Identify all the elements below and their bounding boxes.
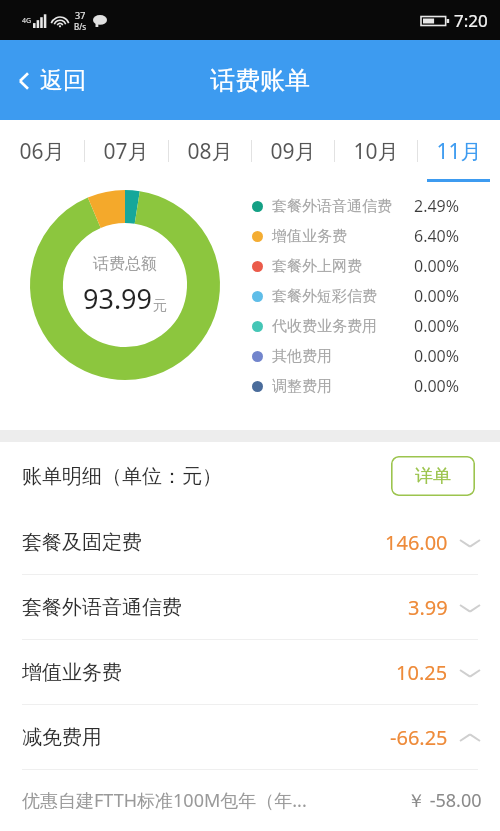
other: Expand (460, 602, 480, 614)
button[interactable]: 返回 (0, 58, 100, 103)
staticText: 10月 (353, 137, 399, 166)
staticText: 优惠自建FTTH标准100M包年（年... (22, 788, 312, 813)
staticText: 话费账单 (210, 65, 310, 96)
button[interactable]: 08月 (168, 120, 251, 182)
button[interactable]: 套餐外语音通信费 (0, 575, 500, 639)
button[interactable]: 07月 (84, 120, 168, 182)
staticText: 套餐外上网费 (272, 257, 362, 276)
button[interactable]: 减免费用 (0, 705, 500, 769)
staticText: 增值业务费 (272, 227, 347, 246)
button[interactable]: 套餐及固定费 (0, 510, 500, 574)
staticText: 其他费用 (272, 347, 332, 366)
staticText: 93.99 (83, 280, 153, 317)
staticText: 套餐及固定费 (22, 530, 142, 555)
staticText: B/s (74, 21, 87, 32)
staticText: 元 (153, 297, 167, 315)
staticText: 0.00% (414, 375, 460, 397)
staticText: 08月 (187, 137, 233, 166)
staticText: 37 (75, 9, 86, 21)
staticText: 7:20 (454, 9, 488, 32)
staticText: 调整费用 (272, 377, 332, 396)
other: Collapse (460, 732, 480, 744)
staticText: 3.99 (408, 594, 448, 621)
button[interactable]: 优惠自建FTTH标准100M包年（年... (0, 770, 500, 831)
staticText: 套餐外语音通信费 (272, 197, 392, 216)
staticText: 11月 (436, 137, 482, 166)
staticText: -66.25 (390, 724, 448, 751)
staticText: 套餐外短彩信费 (272, 287, 377, 306)
button[interactable]: 11月 (417, 120, 500, 182)
button[interactable]: 09月 (251, 120, 334, 182)
staticText: 10.25 (396, 659, 448, 686)
staticText: 0.00% (414, 315, 460, 337)
staticText: 0.00% (414, 285, 460, 307)
button[interactable]: 10月 (334, 120, 417, 182)
staticText: 减免费用 (22, 725, 102, 750)
button[interactable]: 详单 (391, 456, 475, 496)
staticText: 0.00% (414, 345, 460, 367)
staticText: 返回 (40, 66, 86, 95)
staticText: 06月 (19, 137, 65, 166)
other: Expand (460, 667, 480, 679)
staticText: 2.49% (414, 195, 460, 217)
staticText: 代收费业务费用 (272, 317, 377, 336)
staticText: 增值业务费 (22, 660, 122, 685)
staticText: 详单 (415, 465, 451, 488)
staticText: ￥ -58.00 (407, 788, 482, 813)
other: Expand (460, 537, 480, 549)
staticText: 09月 (270, 137, 316, 166)
staticText: 4G (22, 16, 32, 26)
staticText: 账单明细（单位：元） (22, 464, 222, 489)
staticText: 6.40% (414, 225, 460, 247)
staticText: 07月 (103, 137, 149, 166)
staticText: 146.00 (385, 529, 448, 556)
staticText: 话费总额 (93, 254, 157, 274)
button[interactable]: 06月 (0, 120, 84, 182)
staticText: 套餐外语音通信费 (22, 595, 182, 620)
staticText: 0.00% (414, 255, 460, 277)
button[interactable]: 增值业务费 (0, 640, 500, 704)
